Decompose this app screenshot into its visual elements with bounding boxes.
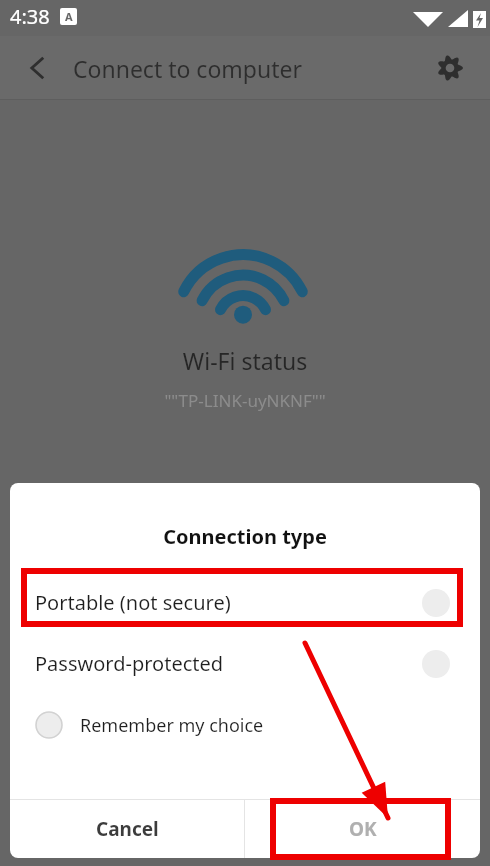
button[interactable]: Cancel <box>10 800 244 858</box>
button[interactable]: Portable (not secure) <box>10 572 480 633</box>
staticText: A <box>65 9 73 24</box>
button[interactable]: Password-protected <box>10 633 480 694</box>
staticText: 4:38 <box>10 3 50 30</box>
button[interactable]: Remember my choice <box>10 694 480 756</box>
staticText: Wi-Fi status <box>0 345 490 376</box>
staticText: Cancel <box>96 816 159 842</box>
button[interactable]: Settings <box>427 45 473 91</box>
button[interactable]: OK <box>245 800 480 858</box>
staticText: Password-protected <box>35 650 224 677</box>
button[interactable]: Back <box>14 45 60 91</box>
staticText: Remember my choice <box>80 713 264 738</box>
staticText: ""TP-LINK-uyNKNF"" <box>0 389 490 412</box>
staticText: OK <box>349 816 377 842</box>
staticText: Connect to computer <box>73 53 302 84</box>
staticText: Connection type <box>10 523 480 550</box>
staticText: Portable (not secure) <box>35 589 231 616</box>
